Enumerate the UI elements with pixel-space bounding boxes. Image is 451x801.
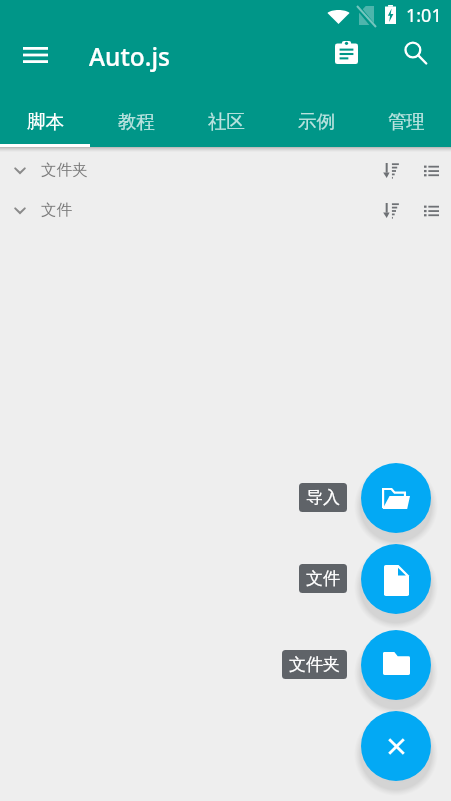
button[interactable]: View mode <box>411 190 451 230</box>
button[interactable]: 文件夹 <box>361 630 431 700</box>
button[interactable]: 文件夹 <box>0 150 451 190</box>
staticText: 文件夹 <box>289 654 340 675</box>
button[interactable]: 社区 <box>181 84 271 147</box>
button[interactable]: 导入 <box>361 463 431 533</box>
staticText: 社区 <box>208 110 245 133</box>
button[interactable]: 教程 <box>91 84 181 147</box>
button[interactable]: Sort <box>371 190 411 230</box>
button[interactable]: Close <box>361 711 431 781</box>
staticText: 文件夹 <box>41 160 88 180</box>
staticText: 管理 <box>388 110 425 133</box>
staticText: 文件 <box>306 568 340 589</box>
staticText: 导入 <box>306 487 340 508</box>
button[interactable]: Sort <box>371 150 411 190</box>
button[interactable]: Menu <box>7 28 63 84</box>
button[interactable]: 文件 <box>361 544 431 614</box>
staticText: Auto.js <box>89 40 170 73</box>
button[interactable]: 导入 <box>0 483 347 512</box>
staticText: 示例 <box>298 110 335 133</box>
button[interactable]: View mode <box>411 150 451 190</box>
button[interactable]: 示例 <box>271 84 361 147</box>
button[interactable]: Logs <box>322 28 370 76</box>
staticText: 文件 <box>41 200 72 220</box>
button[interactable]: 文件 <box>0 564 347 593</box>
button[interactable]: 管理 <box>361 84 451 147</box>
staticText: 1:01 <box>406 3 442 28</box>
button[interactable]: 文件夹 <box>0 650 347 679</box>
button[interactable]: Search <box>391 28 439 76</box>
button[interactable]: 文件 <box>0 190 451 230</box>
button[interactable]: 脚本 <box>0 84 91 147</box>
staticText: 教程 <box>118 110 155 133</box>
staticText: 脚本 <box>27 110 64 133</box>
